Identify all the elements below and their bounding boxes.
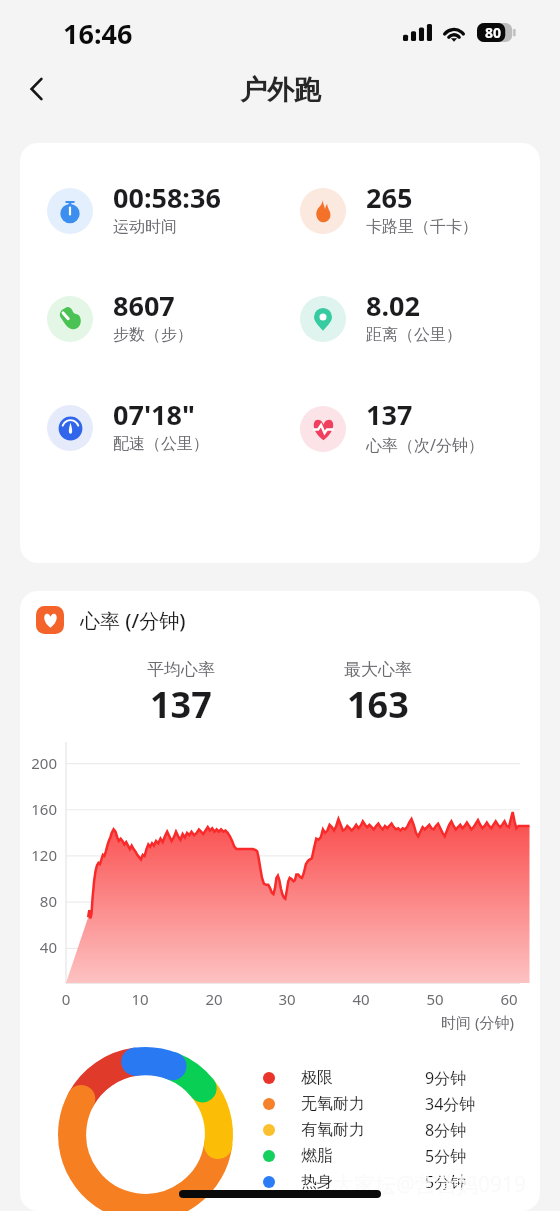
staticText: 50	[415, 989, 455, 1009]
staticText: 200	[20, 753, 57, 773]
staticText: 卡路里（千卡）	[366, 217, 478, 237]
staticText: 运动时间	[113, 217, 177, 237]
staticText: 大家坛@营营妈0919	[333, 1170, 526, 1199]
staticText: 265	[366, 179, 413, 216]
staticText: 34分钟	[425, 1093, 476, 1115]
staticText: 00:58:36	[113, 179, 221, 216]
staticText: 户外跑	[240, 73, 321, 107]
staticText: 燃脂	[301, 1146, 425, 1166]
staticText: 5分钟	[425, 1145, 467, 1167]
staticText: 无氧耐力	[301, 1094, 425, 1114]
staticText: 时间 (分钟)	[441, 1012, 514, 1032]
staticText: 8607	[113, 287, 175, 324]
staticText: 热身	[301, 1172, 425, 1192]
staticText: 60	[489, 989, 529, 1009]
staticText: 120	[20, 845, 57, 865]
staticText: 07'18"	[113, 396, 195, 433]
staticText: 163	[347, 680, 409, 729]
staticText: 配速（公里）	[113, 434, 209, 454]
staticText: 9分钟	[425, 1067, 467, 1089]
staticText: 137	[150, 680, 212, 729]
staticText: 有氧耐力	[301, 1120, 425, 1140]
staticText: 137	[366, 396, 413, 433]
staticText: 平均心率	[147, 659, 215, 680]
staticText: 30	[267, 989, 307, 1009]
button[interactable]: Back	[12, 65, 60, 113]
staticText: 10	[120, 989, 160, 1009]
staticText: 40	[341, 989, 381, 1009]
staticText: 8.02	[366, 287, 420, 324]
staticText: 心率 (/分钟)	[80, 607, 186, 634]
staticText: 80	[485, 23, 502, 42]
staticText: 16:46	[63, 15, 133, 52]
staticText: 步数（步）	[113, 325, 193, 345]
staticText: 20	[194, 989, 234, 1009]
staticText: 160	[20, 799, 57, 819]
staticText: 0	[46, 989, 86, 1009]
staticText: 8分钟	[425, 1119, 467, 1141]
staticText: 最大心率	[344, 659, 412, 680]
staticText: 距离（公里）	[366, 325, 462, 345]
staticText: 极限	[301, 1068, 425, 1088]
staticText: 80	[20, 891, 57, 911]
staticText: 心率（次/分钟）	[366, 434, 484, 456]
staticText: 5分钟	[425, 1171, 467, 1193]
staticText: 40	[20, 937, 57, 957]
